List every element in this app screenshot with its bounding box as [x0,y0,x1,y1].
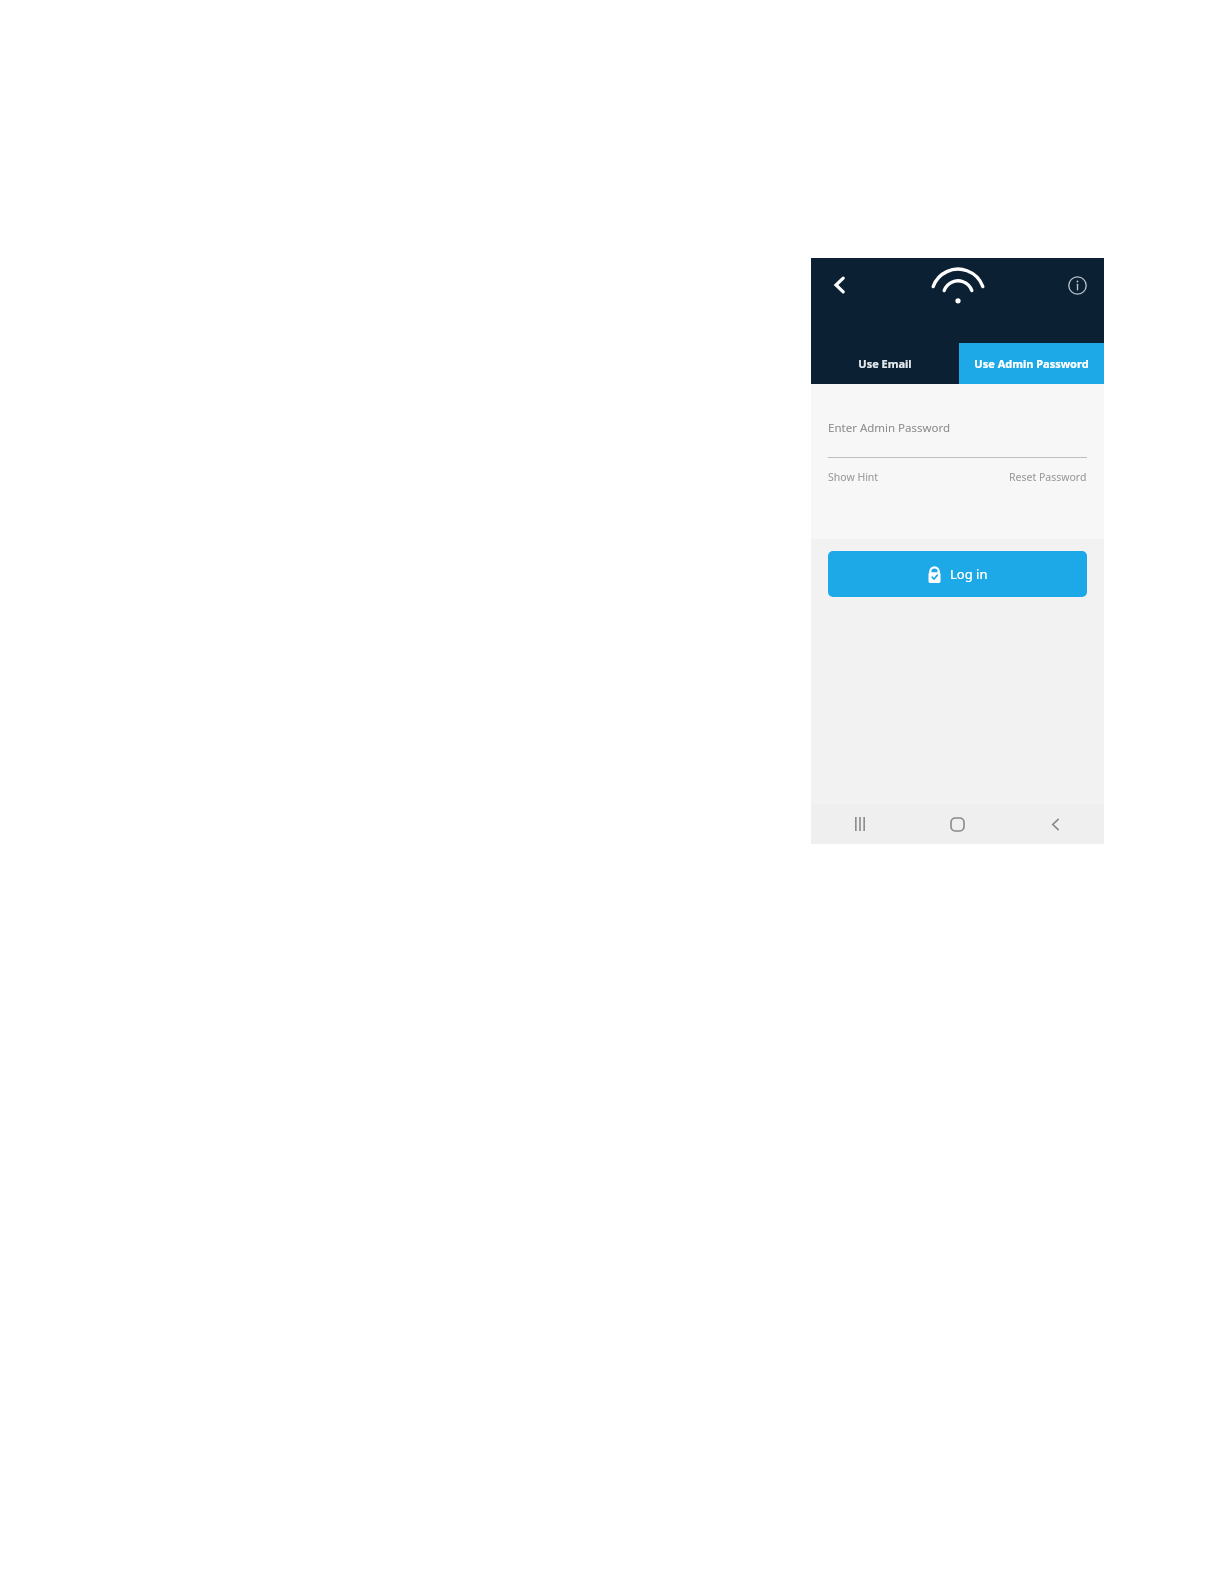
button[interactable]: Home [908,804,1006,844]
button[interactable]: Back [819,264,861,306]
button[interactable]: Show Hint [828,470,879,484]
button[interactable]: Back [1006,804,1104,844]
staticText: Use Admin Password [974,356,1089,371]
button[interactable]: Enter Admin Password [828,420,1087,458]
staticText: Show Hint [828,470,879,484]
button[interactable]: Recent apps [811,804,908,844]
button[interactable]: Log in [828,551,1087,597]
staticText: Log in [950,565,988,583]
button[interactable]: Reset Password [1009,470,1087,484]
button[interactable]: Use Email [811,343,959,384]
staticText: Reset Password [1009,470,1087,484]
button[interactable]: Info [1058,266,1096,304]
staticText: Enter Admin Password [828,420,951,436]
staticText: Use Email [858,356,912,371]
button[interactable]: Use Admin Password [959,343,1104,384]
